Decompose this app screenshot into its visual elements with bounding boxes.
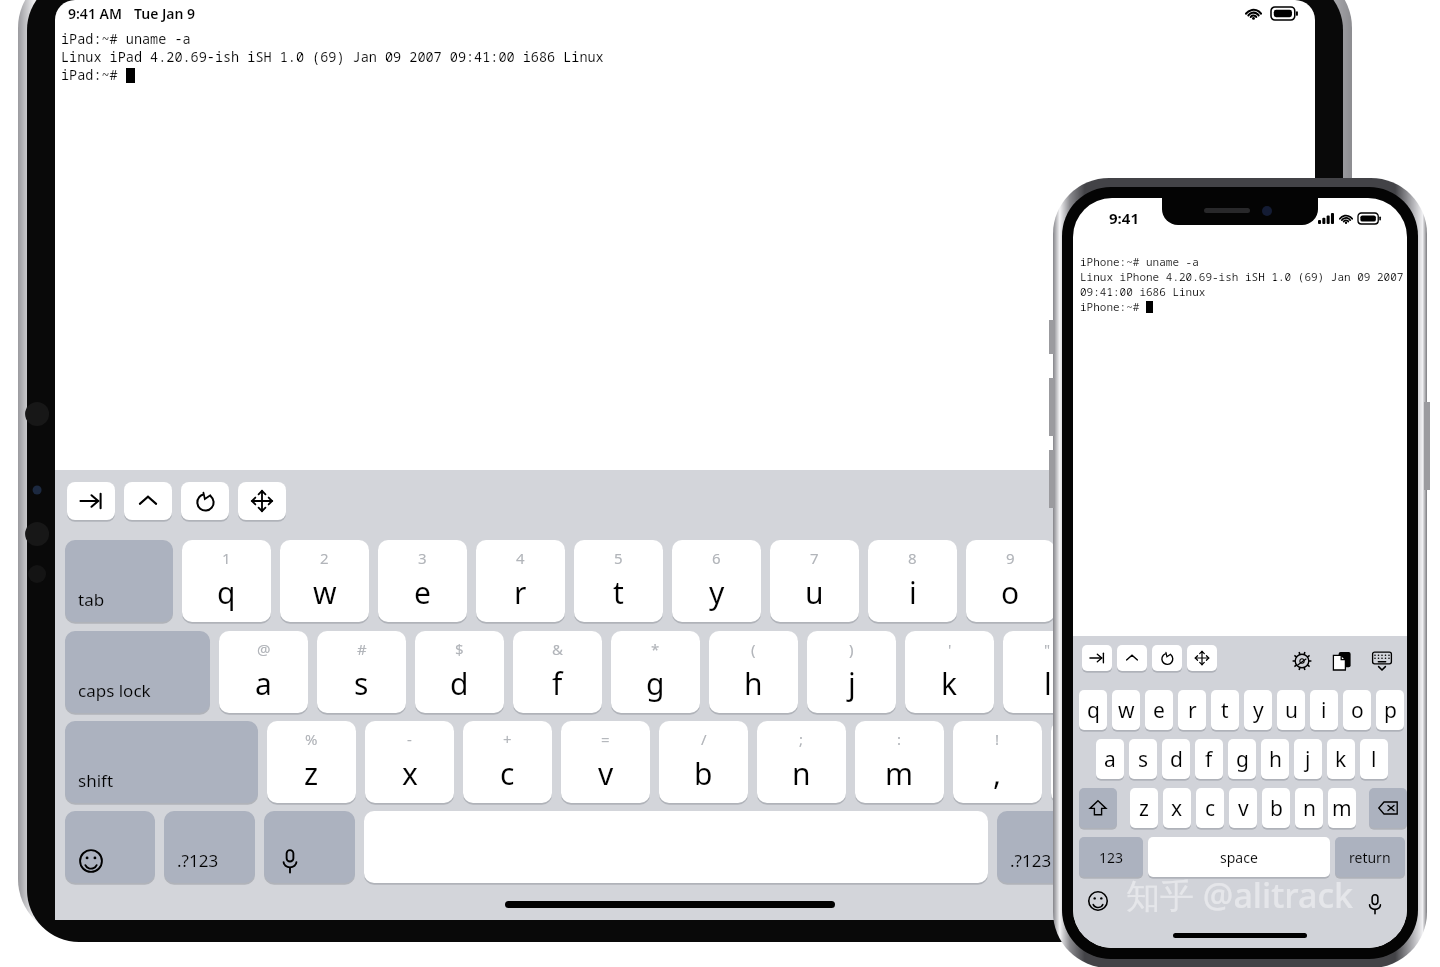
button[interactable]: Shift — [1079, 788, 1117, 828]
button[interactable]: Arrow keys — [238, 482, 286, 520]
button[interactable]: .?123 — [164, 811, 255, 883]
button[interactable]: : — [855, 721, 944, 803]
staticText: i — [1321, 696, 1327, 725]
button[interactable]: 7 — [770, 540, 859, 622]
button[interactable]: l — [1360, 739, 1388, 779]
button[interactable]: Settings — [1289, 648, 1315, 674]
button[interactable]: @ — [219, 631, 308, 713]
button[interactable]: Emoji — [65, 811, 155, 883]
button[interactable]: return — [1335, 837, 1405, 877]
button[interactable]: b — [1262, 788, 1290, 828]
button[interactable]: * — [611, 631, 700, 713]
button[interactable]: Escape — [181, 482, 229, 520]
button[interactable]: caps lock — [65, 631, 210, 713]
staticText: y — [1253, 696, 1264, 725]
button[interactable]: 123 — [1079, 837, 1143, 877]
button[interactable]: q — [1079, 690, 1107, 730]
button[interactable]: w — [1112, 690, 1140, 730]
button[interactable]: / — [659, 721, 748, 803]
button[interactable] — [1149, 721, 1299, 803]
staticText: p — [1384, 696, 1397, 725]
button[interactable]: Hide keyboard — [1369, 648, 1395, 674]
staticText: u — [805, 572, 824, 613]
button[interactable]: e — [1145, 690, 1173, 730]
button[interactable]: Control — [124, 482, 172, 520]
staticText: .?123 — [1010, 849, 1052, 872]
button[interactable]: ' — [905, 631, 994, 713]
button[interactable]: Dictation — [264, 811, 355, 883]
button[interactable]: o — [1343, 690, 1371, 730]
staticText: ' — [948, 639, 952, 659]
button[interactable]: 2 — [280, 540, 369, 622]
staticText: = — [601, 729, 610, 749]
button[interactable]: ! — [953, 721, 1042, 803]
button[interactable]: 9 — [966, 540, 1055, 622]
button[interactable]: Tab — [1082, 645, 1112, 671]
button[interactable]: c — [1196, 788, 1224, 828]
button[interactable]: ? — [1051, 721, 1140, 803]
button[interactable]: 0 — [1064, 540, 1153, 622]
button[interactable]: 8 — [868, 540, 957, 622]
button[interactable]: - — [365, 721, 454, 803]
button[interactable]: space — [1148, 837, 1330, 877]
button[interactable]: + — [463, 721, 552, 803]
button[interactable]: h — [1261, 739, 1289, 779]
button[interactable]: g — [1228, 739, 1256, 779]
button[interactable]: y — [1244, 690, 1272, 730]
button[interactable]: Arrow keys — [1187, 645, 1217, 671]
button[interactable]: shift — [65, 721, 258, 803]
button[interactable]: u — [1277, 690, 1305, 730]
button[interactable]: k — [1327, 739, 1355, 779]
button[interactable]: a — [1096, 739, 1124, 779]
staticText: return — [1349, 848, 1391, 867]
button[interactable]: m — [1328, 788, 1356, 828]
button[interactable]: 1 — [182, 540, 271, 622]
button[interactable]: s — [1129, 739, 1157, 779]
button[interactable]: x — [1163, 788, 1191, 828]
button[interactable]: .?123 — [997, 811, 1088, 883]
button[interactable]: Tab — [67, 482, 115, 520]
button[interactable]: Emoji — [1083, 886, 1113, 916]
button[interactable]: Escape — [1152, 645, 1182, 671]
button[interactable]: " — [1003, 631, 1092, 713]
staticText: j — [1305, 745, 1311, 774]
button[interactable]: ) — [807, 631, 896, 713]
button[interactable]: 6 — [672, 540, 761, 622]
staticText: b — [1270, 794, 1283, 823]
staticText: 123 — [1099, 848, 1124, 867]
button[interactable]: f — [1195, 739, 1223, 779]
staticText: g — [1236, 745, 1249, 774]
button[interactable]: tab — [65, 540, 173, 622]
button[interactable]: t — [1211, 690, 1239, 730]
button[interactable]: j — [1294, 739, 1322, 779]
button[interactable]: $ — [415, 631, 504, 713]
button[interactable]: 3 — [378, 540, 467, 622]
button[interactable]: d — [1162, 739, 1190, 779]
button[interactable]: 5 — [574, 540, 663, 622]
button[interactable]: Paste — [1329, 648, 1355, 674]
button[interactable]: & — [513, 631, 602, 713]
staticText: e — [1153, 696, 1165, 725]
button[interactable]: # — [317, 631, 406, 713]
button[interactable]: Dictation — [1361, 890, 1389, 918]
button[interactable]: Backspace — [1369, 788, 1407, 828]
button[interactable]: % — [267, 721, 356, 803]
staticText: iPhone:~# uname -a — [1080, 254, 1199, 269]
button[interactable]: r — [1178, 690, 1206, 730]
button[interactable]: p — [1376, 690, 1404, 730]
staticText: t — [1221, 696, 1229, 725]
button[interactable]: 4 — [476, 540, 565, 622]
button[interactable]: z — [1130, 788, 1158, 828]
button[interactable]: n — [1295, 788, 1323, 828]
button[interactable]: v — [1229, 788, 1257, 828]
button[interactable]: ; — [757, 721, 846, 803]
button[interactable]: i — [1310, 690, 1338, 730]
button[interactable]: = — [561, 721, 650, 803]
button[interactable]: Control — [1117, 645, 1147, 671]
button[interactable] — [1101, 631, 1251, 713]
button[interactable]: ( — [709, 631, 798, 713]
staticText: 9:41 AM — [68, 4, 122, 23]
